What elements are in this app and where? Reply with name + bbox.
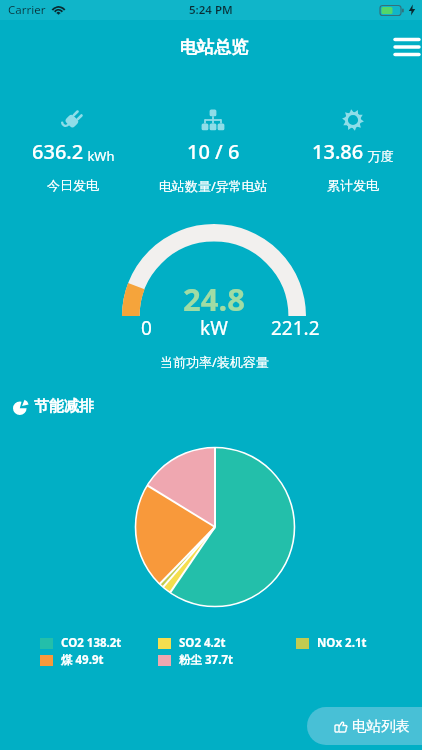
staticText: 煤 49.9t bbox=[61, 652, 104, 668]
staticText: 0 bbox=[141, 315, 152, 341]
staticText: SO2 4.2t bbox=[179, 635, 226, 651]
staticText: 24.8 bbox=[183, 278, 245, 320]
staticText: Carrier bbox=[8, 2, 46, 18]
staticText: 当前功率/装机容量 bbox=[160, 353, 269, 371]
staticText: 636.2 bbox=[32, 138, 84, 165]
staticText: 10 / 6 bbox=[187, 138, 240, 165]
staticText: NOx 2.1t bbox=[317, 635, 367, 651]
staticText: 累计发电 bbox=[327, 177, 379, 193]
staticText: 粉尘 37.7t bbox=[179, 652, 233, 668]
button[interactable]: 电站列表 bbox=[307, 707, 422, 745]
staticText: 今日发电 bbox=[47, 177, 99, 193]
staticText: CO2 138.2t bbox=[61, 635, 122, 651]
staticText: 电站列表 bbox=[352, 717, 410, 735]
staticText: 5:24 PM bbox=[189, 2, 233, 18]
button[interactable] bbox=[390, 31, 422, 63]
staticText: 电站总览 bbox=[180, 37, 248, 58]
staticText: 电站数量/异常电站 bbox=[159, 177, 268, 195]
staticText: 221.2 bbox=[271, 315, 320, 341]
staticText: 13.86 bbox=[312, 138, 364, 165]
staticText: 万度 bbox=[364, 147, 394, 165]
staticText: kW bbox=[200, 315, 228, 341]
staticText: 节能减排 bbox=[34, 397, 94, 416]
staticText: kWh bbox=[84, 147, 115, 165]
